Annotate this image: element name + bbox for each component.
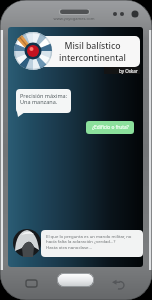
button[interactable]: ¿Edificio o fruta? [86,121,134,134]
button[interactable] [57,273,94,287]
staticText: Misil balístico intercontinental [59,40,126,64]
button[interactable]: Precisión máxima: Una manzana. [16,89,71,113]
staticText: Precisión máxima: Una manzana. [20,92,68,106]
staticText: by Oskar [119,68,138,74]
button[interactable]: Misil balístico intercontinental [38,36,140,67]
staticText: El que lo pregunta es un mando militar, … [46,233,132,251]
staticText: ¿Edificio o fruta? [92,124,129,131]
staticText: www.yoyogames.com [44,16,104,21]
button[interactable]: El que lo pregunta es un mando militar, … [41,230,143,257]
